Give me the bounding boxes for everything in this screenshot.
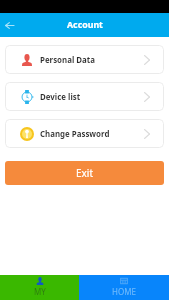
staticText: Exit	[76, 166, 94, 180]
staticText: Change Password	[40, 129, 110, 140]
button[interactable]: Change Password	[5, 119, 164, 148]
staticText: HOME	[112, 286, 136, 297]
staticText: MY	[34, 286, 46, 297]
button[interactable]: Device list	[5, 82, 164, 111]
staticText: Account	[67, 19, 103, 31]
button[interactable]: Back	[0, 13, 20, 37]
staticText: Personal Data	[40, 55, 95, 66]
staticText: Device list	[40, 92, 81, 103]
button[interactable]: HOME	[79, 275, 169, 300]
button[interactable]: Personal Data	[5, 45, 164, 74]
button[interactable]: MY	[0, 275, 79, 300]
button[interactable]: Exit	[5, 161, 164, 185]
